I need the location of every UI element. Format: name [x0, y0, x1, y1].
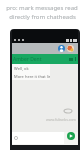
staticText: Well, ok — [14, 66, 29, 71]
staticText: More here it that link — [14, 74, 50, 79]
button[interactable]: Send — [67, 132, 75, 140]
staticText: Amber Dent — [13, 56, 42, 63]
button[interactable]: Chat head contact — [58, 45, 65, 52]
staticText: www.fulwebs.com — [46, 117, 76, 122]
staticText: directly from chatheads — [9, 13, 76, 21]
button[interactable] — [12, 132, 64, 144]
staticText: pro: mark messages read — [6, 4, 78, 12]
button[interactable]: Chat head contact — [67, 45, 74, 52]
button[interactable]: Amber Dent — [12, 54, 78, 64]
